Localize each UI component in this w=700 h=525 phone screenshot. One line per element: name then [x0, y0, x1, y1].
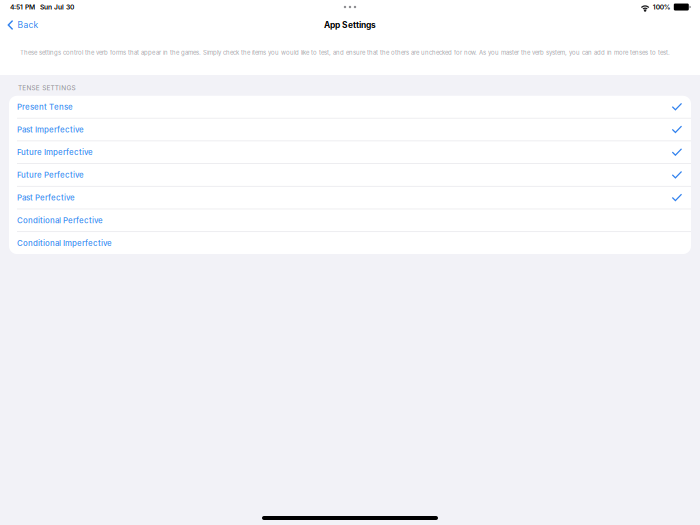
button[interactable]: Conditional Perfective: [9, 209, 691, 231]
staticText: Conditional Perfective: [17, 216, 103, 225]
button[interactable]: Conditional Imperfective: [9, 232, 691, 254]
button[interactable]: Past Perfective: [9, 187, 691, 209]
staticText: These settings control the verb forms th…: [20, 49, 670, 56]
staticText: App Settings: [324, 20, 376, 30]
staticText: Future Imperfective: [17, 147, 93, 157]
staticText: Future Perfective: [17, 170, 84, 180]
staticText: Back: [17, 20, 38, 30]
button[interactable]: Back: [0, 15, 46, 35]
button[interactable]: Future Imperfective: [9, 141, 691, 163]
staticText: 100%: [653, 3, 671, 11]
staticText: Past Imperfective: [17, 125, 84, 134]
staticText: Conditional Imperfective: [17, 238, 112, 248]
staticText: 4:51 PM: [10, 3, 35, 11]
staticText: TENSE SETTINGS: [18, 84, 75, 92]
button[interactable]: Present Tense: [9, 96, 691, 118]
staticText: Present Tense: [17, 102, 73, 112]
staticText: Past Perfective: [17, 193, 75, 202]
button[interactable]: Future Perfective: [9, 164, 691, 186]
staticText: Sun Jul 30: [40, 3, 74, 11]
button[interactable]: Past Imperfective: [9, 118, 691, 140]
